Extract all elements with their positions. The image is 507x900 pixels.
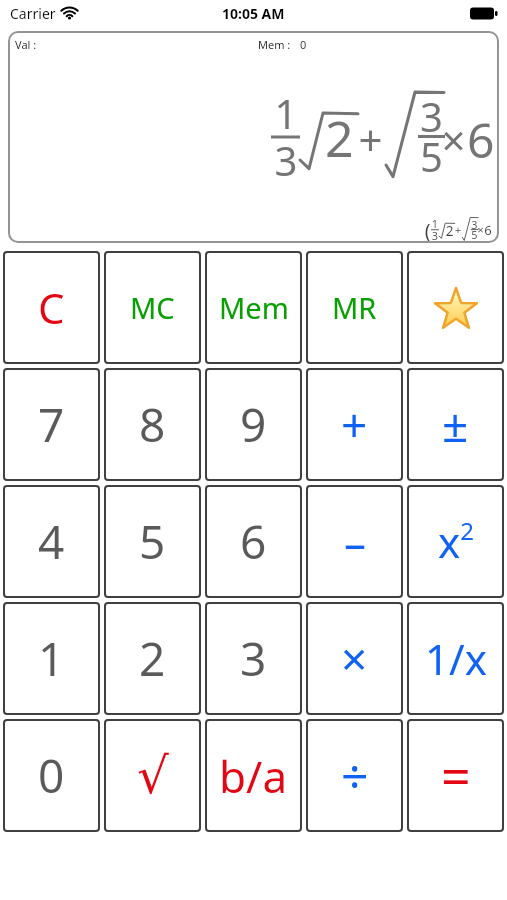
- staticText: 3: [240, 627, 267, 690]
- button[interactable]: √: [104, 719, 201, 832]
- staticText: Mem: [219, 288, 289, 327]
- button[interactable]: 4: [3, 485, 100, 598]
- button[interactable]: 6: [205, 485, 302, 598]
- staticText: ÷: [341, 743, 369, 808]
- staticText: √: [137, 747, 169, 805]
- staticText: 1: [38, 627, 65, 690]
- button[interactable]: 0: [3, 719, 100, 832]
- button[interactable]: +: [306, 368, 403, 481]
- staticText: MC: [130, 288, 175, 327]
- staticText: C: [38, 279, 65, 336]
- button[interactable]: 9: [205, 368, 302, 481]
- button[interactable]: MR: [306, 251, 403, 364]
- button[interactable]: x2: [407, 485, 504, 598]
- button[interactable]: MC: [104, 251, 201, 364]
- staticText: 0: [38, 744, 65, 807]
- staticText: Carrier: [10, 4, 56, 23]
- staticText: 2: [139, 627, 166, 690]
- staticText: 0: [300, 37, 307, 52]
- staticText: x2: [438, 513, 474, 570]
- button[interactable]: Mem: [205, 251, 302, 364]
- staticText: ×: [341, 627, 368, 690]
- button[interactable]: 3: [205, 602, 302, 715]
- staticText: 9: [240, 393, 267, 456]
- staticText: 8: [139, 393, 166, 456]
- button[interactable]: –: [306, 485, 403, 598]
- button[interactable]: b/a: [205, 719, 302, 832]
- button[interactable]: ×: [306, 602, 403, 715]
- staticText: 6: [240, 510, 267, 573]
- button[interactable]: [407, 251, 504, 364]
- staticText: 7: [38, 393, 65, 456]
- button[interactable]: ÷: [306, 719, 403, 832]
- staticText: +: [341, 393, 368, 456]
- button[interactable]: 1/x: [407, 602, 504, 715]
- button[interactable]: 2: [104, 602, 201, 715]
- staticText: –: [344, 512, 366, 572]
- button[interactable]: 1: [3, 602, 100, 715]
- staticText: b/a: [219, 746, 288, 806]
- staticText: =: [441, 740, 471, 811]
- button[interactable]: C: [3, 251, 100, 364]
- staticText: Mem :: [258, 37, 291, 52]
- staticText: 4: [38, 510, 65, 573]
- button[interactable]: 5: [104, 485, 201, 598]
- staticText: Val :: [15, 37, 37, 52]
- button[interactable]: 8: [104, 368, 201, 481]
- button[interactable]: =: [407, 719, 504, 832]
- staticText: 10:05 AM: [222, 4, 285, 23]
- button[interactable]: ±: [407, 368, 504, 481]
- button[interactable]: 7: [3, 368, 100, 481]
- staticText: 1/x: [425, 630, 487, 687]
- staticText: MR: [332, 288, 377, 327]
- staticText: 5: [139, 510, 166, 573]
- staticText: ±: [442, 393, 469, 456]
